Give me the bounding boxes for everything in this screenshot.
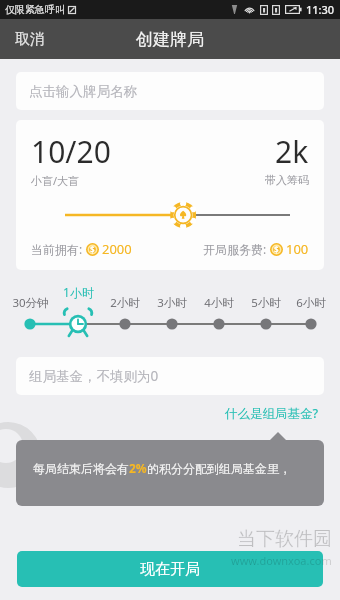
button[interactable]: 4小时 [195,295,243,324]
button[interactable]: 现在开局 [17,551,323,587]
staticText: 2k [275,131,309,172]
button[interactable]: 1小时 [54,284,102,324]
staticText: 点击输入牌局名称 [29,83,137,100]
button[interactable]: 30分钟 [6,295,54,324]
staticText: 2小时 [110,295,140,311]
staticText: 取消 [15,30,45,49]
staticText: 每局结束后将会有 [33,461,129,476]
staticText: $ [274,244,279,255]
staticText: 当下软件园 [237,527,332,551]
staticText: $ [90,244,95,255]
staticText: 现在开局 [140,560,200,579]
staticText: 仅限紧急呼叫 [5,3,65,16]
staticText: 什么是组局基金? [225,405,319,422]
staticText: 的积分分配到组局基金里， [147,461,291,476]
staticText: www.downxoa.com [231,553,332,568]
staticText: 6小时 [296,295,326,311]
staticText: 组局基金，不填则为0 [29,367,159,385]
staticText: 带入筹码 [265,173,309,187]
button[interactable]: 点击输入牌局名称 [16,72,324,110]
staticText: 开局服务费: [203,241,267,257]
button[interactable]: 6小时 [287,295,335,324]
staticText: 小盲/大盲 [31,173,80,188]
staticText: 10/20 [31,131,111,172]
staticText: 30分钟 [12,295,49,311]
button[interactable]: 取消 [0,19,60,59]
button[interactable]: 什么是组局基金? [222,402,322,425]
button[interactable]: 3小时 [148,295,196,324]
button[interactable]: 2小时 [101,295,149,324]
staticText: 1小时 [63,284,94,300]
staticText: 当前拥有: [31,241,83,257]
staticText: 11:30 [306,2,335,17]
staticText: 5小时 [251,295,281,311]
staticText: 2000 [102,240,132,258]
button[interactable]: 组局基金，不填则为0 [16,357,324,395]
staticText: 2% [129,460,147,476]
staticText: 3小时 [157,295,187,311]
button[interactable]: Buy-in slider [16,198,324,232]
staticText: 创建牌局 [136,29,204,50]
button[interactable]: 5小时 [242,295,290,324]
staticText: 4小时 [204,295,234,311]
staticText: 100 [286,240,309,258]
